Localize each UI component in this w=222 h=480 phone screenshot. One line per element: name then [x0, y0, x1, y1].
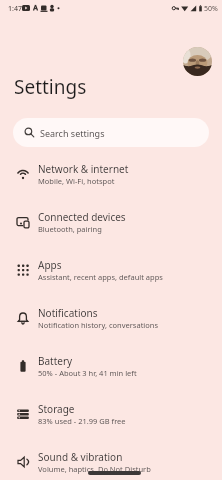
staticText: Notifications [38, 306, 98, 320]
staticText: Assistant, recent apps, default apps [38, 272, 163, 282]
button[interactable]: Notifications [0, 294, 222, 342]
button[interactable]: Battery [0, 342, 222, 390]
staticText: 83% used - 21.99 GB free [38, 416, 126, 426]
button[interactable]: Connected devices [0, 198, 222, 246]
staticText: Apps [38, 258, 62, 272]
button[interactable]: Sound & vibration [0, 438, 222, 480]
staticText: Battery [38, 354, 73, 368]
button[interactable] [183, 47, 212, 76]
staticText: Network & internet [38, 162, 129, 176]
staticText: Settings [14, 74, 87, 100]
staticText: Bluetooth, pairing [38, 224, 102, 234]
staticText: 50% - About 3 hr, 41 min left [38, 368, 137, 378]
button[interactable]: Network & internet [0, 150, 222, 198]
staticText: Sound & vibration [38, 450, 123, 464]
button[interactable]: Apps [0, 246, 222, 294]
staticText: Volume, haptics, Do Not Disturb [38, 464, 151, 474]
staticText: 1:47 [8, 4, 22, 14]
staticText: Search settings [40, 127, 105, 139]
staticText: 50% [204, 4, 218, 14]
button[interactable]: Storage [0, 390, 222, 438]
staticText: Storage [38, 402, 75, 416]
button[interactable]: Search settings [13, 118, 209, 147]
staticText: Notification history, conversations [38, 320, 159, 330]
staticText: Mobile, Wi-Fi, hotspot [38, 176, 115, 186]
staticText: Connected devices [38, 210, 126, 224]
